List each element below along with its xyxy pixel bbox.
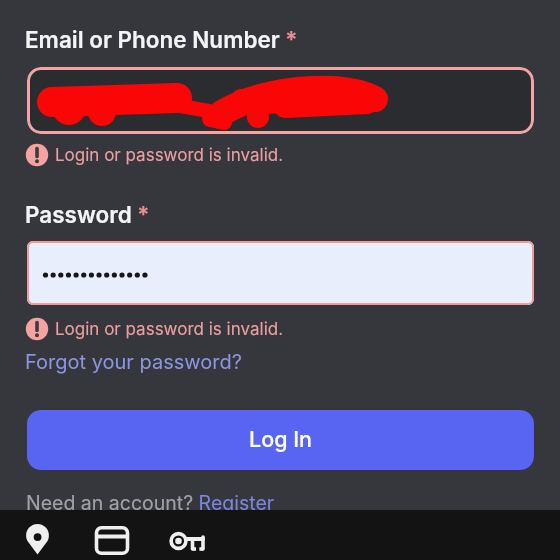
staticText: Forgot your password? (25, 350, 242, 374)
staticText: Login or password is invalid. (55, 319, 284, 340)
button[interactable]: Log In (27, 410, 534, 470)
button[interactable] (27, 241, 534, 305)
button[interactable]: Need an account? Register (26, 491, 275, 515)
button[interactable] (165, 528, 209, 554)
staticText: Email or Phone Number * (25, 26, 298, 53)
button[interactable] (22, 518, 54, 558)
button[interactable]: Forgot your password? (25, 350, 242, 374)
staticText: Log In (249, 426, 312, 452)
button[interactable] (27, 67, 534, 134)
staticText: Login or password is invalid. (55, 145, 284, 166)
staticText: Password * (25, 201, 150, 228)
button[interactable] (92, 525, 130, 559)
